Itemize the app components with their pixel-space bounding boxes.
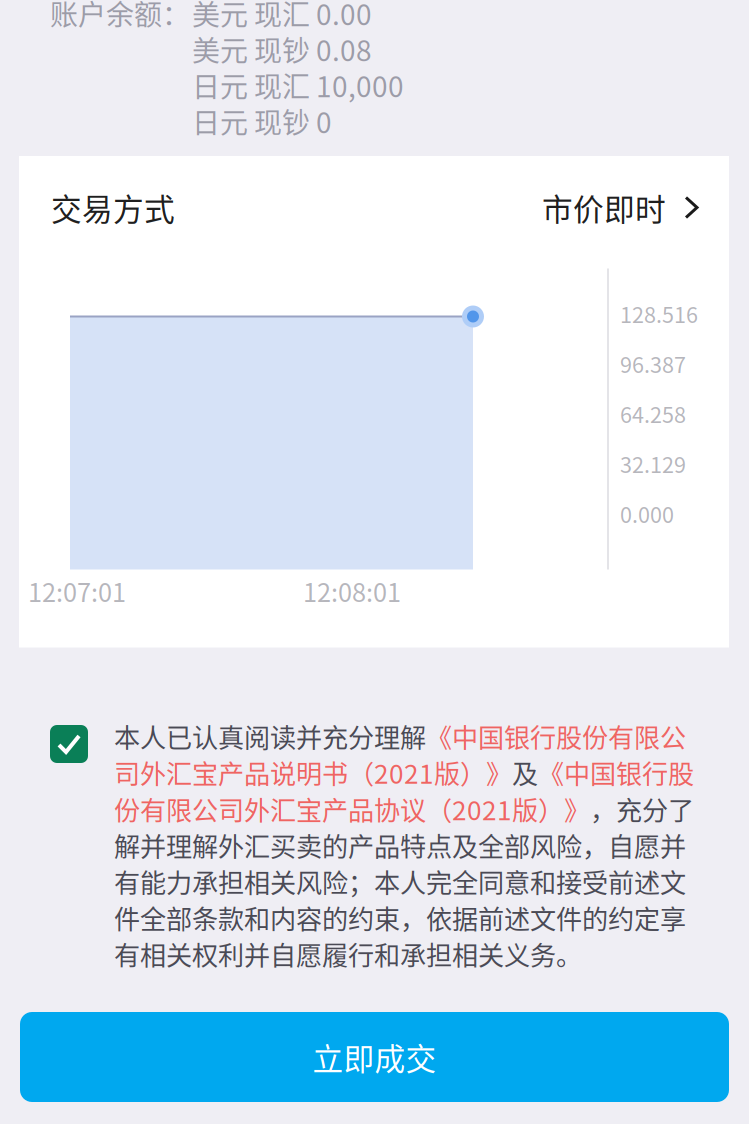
staticText: 有相关权利并自愿履行和承担相关义务。 [114,935,582,973]
staticText: 12:08:01 [303,572,401,609]
staticText: 有能力承担相关风险；本人完全同意和接受前述文 [114,862,686,900]
staticText: 64.258 [620,398,686,429]
staticText: 账户余额： [50,0,190,33]
staticText: 日元 现汇 10,000 [192,65,404,105]
staticText: 32.129 [620,448,686,479]
staticText: 份有限公司外汇宝产品协议（2021版）》 [114,790,590,828]
staticText: 解并理解外汇买卖的产品特点及全部风险，自愿并 [114,826,686,864]
staticText: 市价即时 [542,185,666,230]
staticText: 件全部条款和内容的约束，依据前述文件的约定享 [114,899,686,936]
staticText: 及 [512,753,538,791]
staticText: 《中国银行股份有限公 [426,717,686,755]
staticText: ，充分了 [590,790,694,828]
staticText: 美元 现钞 0.08 [192,29,372,69]
staticText: 日元 现钞 0 [192,101,332,141]
staticText: 立即成交 [312,1035,436,1079]
staticText: 0.000 [620,498,674,529]
button[interactable]: 同意产品协议 [50,718,88,763]
staticText: 美元 现汇 0.00 [192,0,372,33]
staticText: 96.387 [620,348,686,379]
staticText: 司外汇宝产品说明书（2021版）》 [114,753,512,791]
staticText: 交易方式 [51,185,175,230]
staticText: 128.516 [620,298,698,329]
staticText: 《中国银行股 [538,753,694,791]
staticText: 本人已认真阅读并充分理解 [114,717,426,755]
button[interactable]: 立即成交 [20,1012,729,1102]
staticText: 12:07:01 [28,572,126,609]
button[interactable]: 交易方式 [19,146,729,249]
